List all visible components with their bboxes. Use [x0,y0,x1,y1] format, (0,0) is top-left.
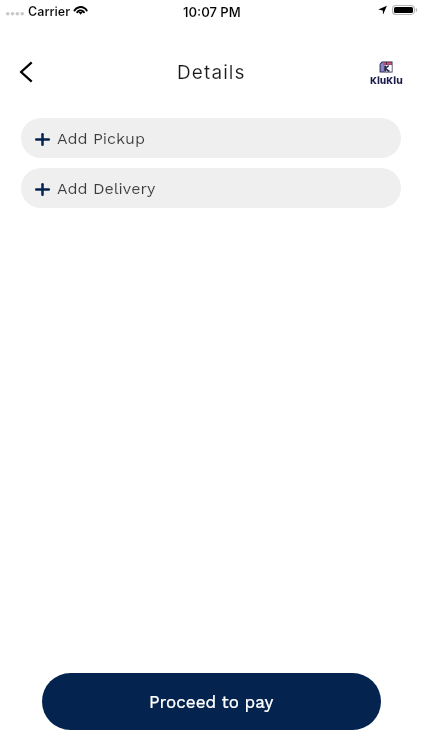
button[interactable]: Add Pickup [21,118,401,158]
staticText: Add Pickup [57,129,145,148]
staticText: Details [177,61,246,84]
button[interactable]: Add Delivery [21,168,401,208]
staticText: KluKlu [370,74,403,87]
staticText: Add Delivery [57,179,156,198]
staticText: 10:07 PM [183,4,241,20]
staticText: Proceed to pay [149,692,274,712]
staticText: Carrier [28,4,71,19]
button[interactable]: KluKlu [368,57,404,91]
button[interactable]: Proceed to pay [42,673,381,730]
button[interactable]: Back [11,57,41,87]
